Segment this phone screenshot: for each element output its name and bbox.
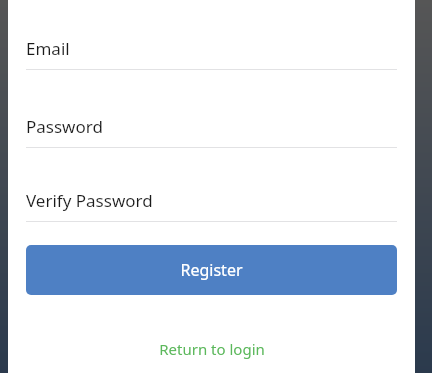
- button[interactable]: Password: [26, 105, 397, 148]
- button[interactable]: Register: [26, 245, 397, 295]
- staticText: Verify Password: [26, 189, 153, 212]
- button[interactable]: Return to login: [149, 333, 275, 365]
- staticText: Register: [180, 259, 243, 281]
- staticText: Password: [26, 115, 103, 138]
- button[interactable]: Email: [26, 27, 397, 70]
- staticText: Email: [26, 37, 70, 60]
- button[interactable]: Verify Password: [26, 179, 397, 222]
- staticText: Return to login: [159, 339, 265, 359]
